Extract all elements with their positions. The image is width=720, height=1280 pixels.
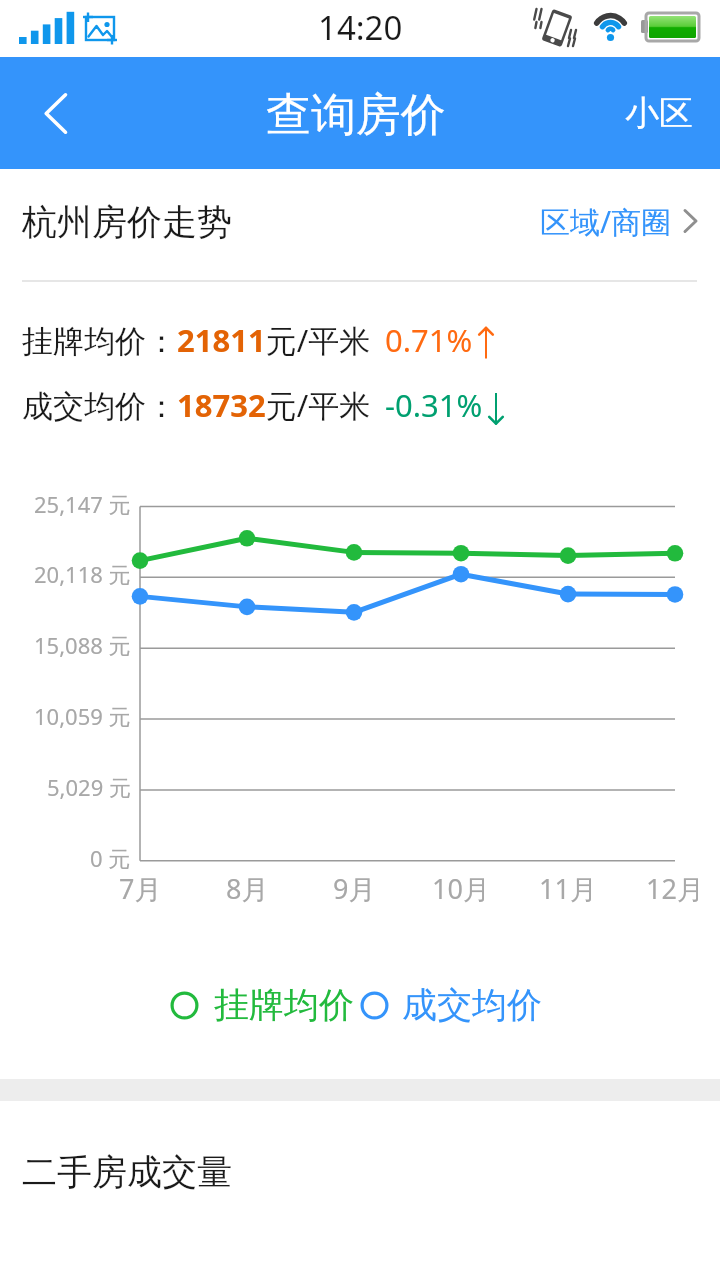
staticText: 8月 — [226, 870, 269, 904]
staticText: 15,088 元 — [34, 630, 131, 660]
staticText: 12月 — [646, 870, 704, 904]
staticText: 7月 — [119, 870, 162, 904]
staticText: 0.71% — [385, 319, 473, 361]
staticText: 小区 — [625, 92, 693, 135]
staticText: 成交均价 — [402, 983, 542, 1027]
button[interactable]: 区域/商圈 — [524, 186, 720, 256]
staticText: 挂牌均价：21811元/平米 — [22, 319, 371, 361]
staticText: 11月 — [539, 870, 597, 904]
staticText: 20,118 元 — [34, 559, 131, 589]
staticText: 5,029 元 — [47, 772, 131, 802]
staticText: 9月 — [333, 870, 376, 904]
button[interactable]: Back — [0, 57, 104, 169]
staticText: 查询房价 — [266, 87, 446, 144]
staticText: 二手房成交量 — [22, 1150, 232, 1194]
staticText: 成交均价：18732元/平米 — [22, 384, 371, 426]
staticText: 10,059 元 — [34, 701, 131, 731]
staticText: 25,147 元 — [34, 489, 131, 519]
button[interactable]: 小区 — [595, 57, 720, 169]
staticText: 杭州房价走势 — [22, 200, 232, 244]
staticText: 14:20 — [318, 5, 403, 50]
staticText: -0.31% — [385, 384, 483, 426]
staticText: 0 元 — [90, 843, 131, 873]
button[interactable]: 挂牌均价 — [170, 983, 354, 1027]
staticText: 10月 — [432, 870, 490, 904]
staticText: 区域/商圈 — [540, 201, 672, 242]
staticText: 挂牌均价 — [214, 983, 354, 1027]
button[interactable]: 成交均价 — [360, 983, 542, 1027]
